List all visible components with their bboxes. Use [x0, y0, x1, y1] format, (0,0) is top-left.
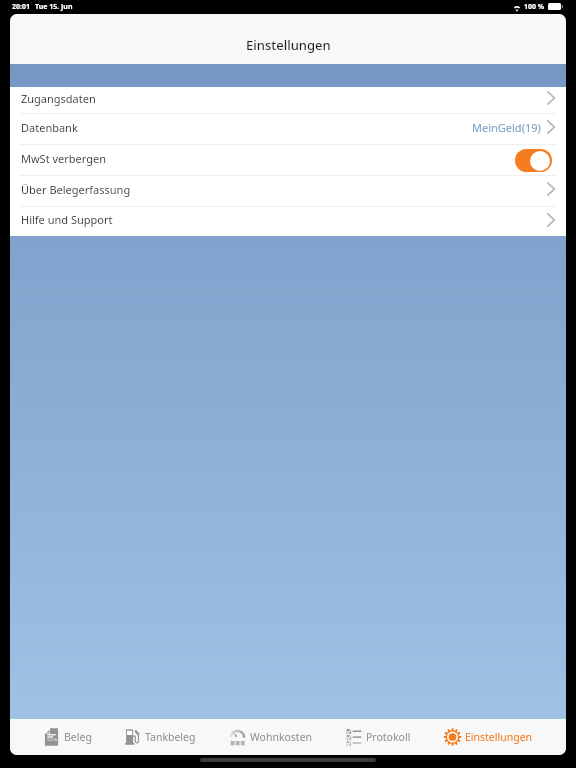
staticText: MwSt verbergen [21, 151, 106, 166]
button[interactable]: Über Belegerfassung [10, 176, 566, 206]
button[interactable]: MwSt verbergen [10, 145, 566, 175]
staticText: Datenbank [21, 120, 78, 135]
staticText: Beleg [64, 730, 92, 744]
staticText: Protokoll [366, 730, 411, 744]
staticText: Wohnkosten [250, 730, 313, 744]
staticText: 100 % [524, 2, 545, 12]
button[interactable]: Einstellungen [445, 719, 533, 755]
button[interactable]: Hilfe und Support [10, 207, 566, 236]
staticText: MeinGeld(19) [472, 120, 541, 135]
staticText: Einstellungen [246, 36, 331, 54]
button[interactable]: Tankbeleg [125, 719, 196, 755]
staticText: Zugangsdaten [21, 91, 96, 106]
staticText: Hilfe und Support [21, 212, 113, 227]
button[interactable]: Datenbank [10, 114, 566, 144]
staticText: 20:01 [12, 2, 30, 12]
button[interactable]: MwSt verbergen ein [515, 149, 552, 172]
button[interactable]: Beleg [44, 719, 92, 755]
button[interactable]: Protokoll [346, 719, 411, 755]
staticText: Über Belegerfassung [21, 182, 131, 197]
staticText: Tankbeleg [145, 730, 196, 744]
staticText: Tue 15. Jun [35, 2, 73, 12]
button[interactable]: Zugangsdaten [10, 87, 566, 113]
button[interactable]: Wohnkosten [230, 719, 313, 755]
staticText: Einstellungen [465, 730, 533, 744]
